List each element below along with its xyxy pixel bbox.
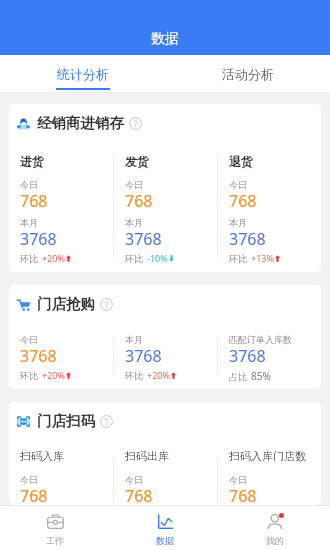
staticText: 今日 (125, 474, 143, 485)
staticText: 统计分析 (57, 66, 109, 82)
staticText: 今日 (20, 179, 38, 190)
staticText: 今日 (20, 474, 38, 485)
staticText: 768 (229, 485, 257, 505)
button[interactable]: Mine (220, 506, 330, 550)
button[interactable]: 门店抢购 (9, 285, 321, 389)
staticText: 768 (125, 190, 153, 212)
staticText: 85% (251, 369, 271, 383)
button[interactable]: 统计分析 (0, 55, 165, 92)
staticText: 768 (20, 190, 48, 212)
button[interactable]: 门店扫码 (9, 402, 321, 505)
staticText: 今日 (125, 179, 143, 190)
staticText: 环比 (229, 253, 247, 264)
staticText: 今日 (20, 334, 38, 345)
staticText: +20% (42, 369, 65, 381)
staticText: 3768 (20, 345, 57, 367)
staticText: 3768 (125, 345, 162, 367)
button[interactable]: Data (110, 506, 220, 550)
staticText: 数据 (151, 30, 179, 48)
staticText: +13% (251, 252, 274, 264)
staticText: 数据 (156, 535, 174, 546)
staticText: 今日 (229, 474, 247, 485)
staticText: +20% (42, 252, 65, 264)
staticText: 占比 (229, 371, 247, 382)
staticText: 今日 (229, 179, 247, 190)
staticText: 经销商进销存 (37, 114, 124, 132)
staticText: 本月 (20, 217, 38, 228)
staticText: 768 (20, 485, 48, 505)
staticText: 活动分析 (222, 66, 274, 82)
staticText: 扫码入库 (20, 449, 64, 463)
staticText: 退货 (229, 154, 253, 169)
staticText: 匹配订单入库数 (229, 334, 292, 345)
button[interactable]: 经销商进销存 (9, 104, 321, 272)
staticText: 进货 (20, 154, 44, 169)
staticText: 门店抢购 (37, 295, 95, 313)
staticText: 本月 (125, 217, 143, 228)
staticText: 3768 (125, 228, 162, 250)
staticText: 扫码入库门店数 (229, 449, 306, 463)
staticText: 3768 (229, 228, 266, 250)
staticText: 768 (229, 190, 257, 212)
staticText: 768 (125, 485, 153, 505)
staticText: 我的 (266, 535, 284, 546)
staticText: -10% (147, 252, 168, 264)
staticText: 3768 (20, 228, 57, 250)
staticText: 工作 (46, 535, 64, 546)
staticText: 环比 (20, 370, 38, 381)
staticText: 发货 (125, 154, 149, 169)
staticText: 本月 (125, 334, 143, 345)
staticText: 本月 (229, 217, 247, 228)
button[interactable]: 活动分析 (165, 55, 330, 92)
button[interactable]: Work (0, 506, 110, 550)
staticText: 门店扫码 (37, 412, 95, 430)
staticText: 环比 (125, 253, 143, 264)
staticText: 3768 (229, 345, 266, 367)
staticText: +20% (147, 369, 170, 381)
staticText: 环比 (20, 253, 38, 264)
staticText: 扫码出库 (125, 449, 169, 463)
staticText: 环比 (125, 370, 143, 381)
